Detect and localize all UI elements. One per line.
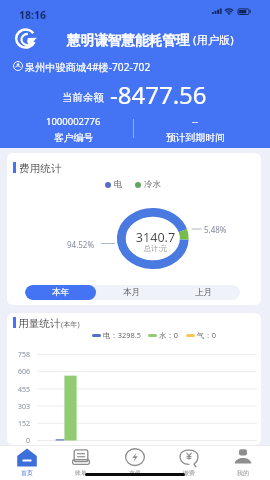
staticText: 152 (10, 419, 30, 429)
staticText: 0 (10, 436, 30, 445)
staticText: 泉州中骏商城4#楼-702-702 (25, 60, 151, 74)
staticText: 303 (10, 402, 30, 412)
staticText: 预计到期时间 (166, 132, 225, 144)
staticText: 758 (10, 350, 30, 360)
staticText: 客户编号 (54, 132, 94, 144)
staticText: 总计:元 (135, 243, 176, 253)
button[interactable]: 本年 (25, 285, 96, 300)
staticText: (本年) (61, 319, 80, 329)
staticText: 我的 (237, 469, 249, 476)
staticText: 上月 (195, 287, 213, 298)
staticText: 电：3298.5 (103, 330, 141, 340)
staticText: 首页 (21, 469, 33, 476)
staticText: 账单 (75, 469, 87, 476)
button[interactable]: 缴费 (162, 445, 216, 480)
staticText: 冷水 (144, 179, 161, 190)
staticText: 94.52% (67, 239, 95, 250)
button[interactable]: 上月 (168, 285, 240, 300)
staticText: 慧明谦智慧能耗管理 (67, 32, 190, 49)
staticText: 5.48% (204, 224, 227, 235)
staticText: 606 (10, 367, 30, 377)
button[interactable]: 充值 (108, 445, 162, 480)
staticText: -- (192, 115, 199, 128)
button[interactable]: 我的 (216, 445, 270, 480)
staticText: 费用统计 (19, 162, 62, 175)
staticText: 气：0 (197, 330, 217, 340)
staticText: 充值 (129, 469, 141, 476)
button[interactable]: 账单 (54, 445, 108, 480)
staticText: 用量统计 (18, 317, 61, 330)
staticText: 455 (10, 385, 30, 395)
staticText: 3140.7 (135, 229, 176, 246)
button[interactable]: 本月 (96, 285, 168, 300)
staticText: 18:16 (19, 8, 46, 22)
staticText: (用户版) (193, 32, 234, 47)
staticText: 当前余额 (62, 91, 104, 104)
staticText: 缴费 (183, 469, 195, 476)
staticText: 1000002776 (46, 115, 101, 128)
staticText: 本年 (52, 287, 70, 298)
button[interactable]: 首页 (0, 445, 54, 480)
staticText: 本月 (123, 287, 141, 298)
staticText: -8477.56 (110, 78, 207, 111)
staticText: 水：0 (159, 330, 179, 340)
staticText: 电 (114, 179, 123, 190)
